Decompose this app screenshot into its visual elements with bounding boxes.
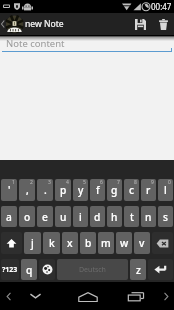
- staticText: m: [101, 236, 111, 250]
- button[interactable]: Enter: [148, 259, 173, 280]
- staticText: 8: [134, 179, 137, 186]
- staticText: w: [120, 236, 129, 250]
- button[interactable]: k: [43, 232, 60, 254]
- staticText: 1: [12, 179, 15, 186]
- staticText: r: [146, 183, 151, 197]
- staticText: x: [67, 236, 73, 250]
- staticText: 3: [48, 179, 51, 186]
- button[interactable]: v: [134, 232, 150, 254]
- staticText: h: [111, 210, 118, 224]
- button[interactable]: Shift: [1, 232, 22, 254]
- button[interactable]: o: [19, 206, 35, 227]
- button[interactable]: j: [24, 232, 41, 254]
- button[interactable]: l: [158, 179, 173, 201]
- button[interactable]: z: [130, 259, 146, 280]
- staticText: o: [24, 210, 31, 224]
- button[interactable]: Change language: [39, 259, 55, 280]
- staticText: .: [44, 183, 47, 197]
- staticText: 0: [168, 179, 171, 186]
- staticText: Deutsch: [79, 265, 106, 275]
- staticText: 9: [151, 179, 154, 186]
- staticText: f: [96, 183, 100, 197]
- button[interactable]: a: [1, 206, 17, 227]
- staticText: g: [111, 183, 118, 197]
- staticText: q: [26, 263, 33, 277]
- button[interactable]: c: [124, 179, 139, 201]
- button[interactable]: t: [124, 206, 139, 227]
- staticText: t: [130, 210, 134, 224]
- staticText: y: [78, 183, 84, 197]
- button[interactable]: More options: [158, 282, 174, 310]
- button[interactable]: f: [90, 179, 105, 201]
- staticText: 5: [83, 179, 86, 186]
- button[interactable]: q: [21, 259, 37, 280]
- button[interactable]: Hide keyboard: [24, 282, 47, 310]
- button[interactable]: w: [116, 232, 132, 254]
- staticText: ?123: [2, 265, 18, 275]
- button[interactable]: b: [80, 232, 96, 254]
- button[interactable]: h: [107, 206, 122, 227]
- button[interactable]: Symbols: [1, 259, 19, 280]
- button[interactable]: r: [141, 179, 156, 201]
- button[interactable]: ,: [19, 179, 35, 201]
- staticText: i: [79, 210, 82, 224]
- button[interactable]: g: [107, 179, 122, 201]
- button[interactable]: x: [62, 232, 78, 254]
- staticText: ,: [26, 183, 29, 197]
- button[interactable]: Delete: [152, 13, 174, 35]
- button[interactable]: Recents: [124, 282, 147, 310]
- staticText: 00:47: [151, 1, 172, 12]
- staticText: a: [6, 210, 12, 224]
- button[interactable]: .: [37, 179, 53, 201]
- button[interactable]: ': [1, 179, 17, 201]
- button[interactable]: Home: [72, 282, 104, 310]
- staticText: 4: [66, 179, 69, 186]
- staticText: s: [163, 210, 168, 224]
- staticText: 7: [117, 179, 120, 186]
- staticText: z: [136, 263, 141, 277]
- button[interactable]: n: [141, 206, 156, 227]
- staticText: ': [8, 183, 11, 197]
- button[interactable]: Back: [0, 282, 16, 310]
- staticText: 6: [100, 179, 103, 186]
- button[interactable]: Up: [0, 13, 64, 35]
- button[interactable]: p: [55, 179, 71, 201]
- staticText: c: [129, 183, 135, 197]
- staticText: l: [164, 183, 167, 197]
- button[interactable]: Deutsch: [57, 259, 128, 280]
- staticText: k: [49, 236, 55, 250]
- staticText: u: [60, 210, 67, 224]
- button[interactable]: m: [98, 232, 114, 254]
- staticText: p: [60, 183, 67, 197]
- staticText: e: [42, 210, 48, 224]
- staticText: 2: [30, 179, 33, 186]
- staticText: d: [94, 210, 101, 224]
- button[interactable]: i: [73, 206, 88, 227]
- button[interactable]: Save: [128, 13, 152, 35]
- button[interactable]: e: [37, 206, 53, 227]
- staticText: b: [85, 236, 92, 250]
- staticText: j: [31, 236, 34, 250]
- button[interactable]: s: [158, 206, 173, 227]
- button[interactable]: d: [90, 206, 105, 227]
- staticText: Note content: [6, 37, 65, 50]
- button[interactable]: u: [55, 206, 71, 227]
- staticText: new Note: [25, 18, 64, 30]
- button[interactable]: Backspace: [152, 232, 173, 254]
- staticText: n: [145, 210, 152, 224]
- button[interactable]: y: [73, 179, 88, 201]
- staticText: v: [139, 236, 145, 250]
